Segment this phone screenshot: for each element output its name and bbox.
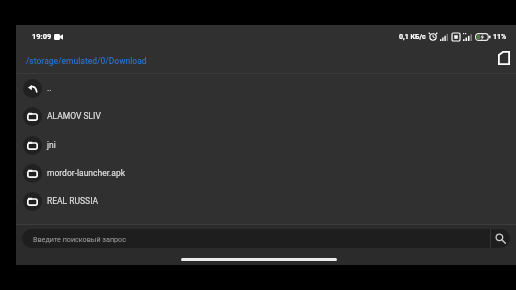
button[interactable]: REAL RUSSIA xyxy=(16,187,516,215)
staticText: .. xyxy=(47,83,52,93)
button[interactable]: Введите поисковый запрос xyxy=(22,229,491,248)
staticText: 19:09 xyxy=(32,32,52,41)
staticText: REAL RUSSIA xyxy=(47,196,99,206)
button[interactable]: New file xyxy=(493,47,515,69)
staticText: Введите поисковый запрос xyxy=(33,235,126,243)
staticText: /storage/emulated/0/Download xyxy=(26,56,147,66)
button[interactable]: .. xyxy=(16,74,516,102)
staticText: jni xyxy=(47,140,56,150)
staticText: mordor-launcher.apk xyxy=(47,168,125,178)
staticText: 0,1 КБ/с xyxy=(399,33,426,41)
staticText: ALAMOV SLIV xyxy=(47,111,101,121)
button[interactable]: ALAMOV SLIV xyxy=(16,102,516,130)
button[interactable]: Search xyxy=(491,229,510,248)
button[interactable]: mordor-launcher.apk xyxy=(16,159,516,187)
staticText: 11% xyxy=(493,33,507,41)
button[interactable]: jni xyxy=(16,131,516,159)
